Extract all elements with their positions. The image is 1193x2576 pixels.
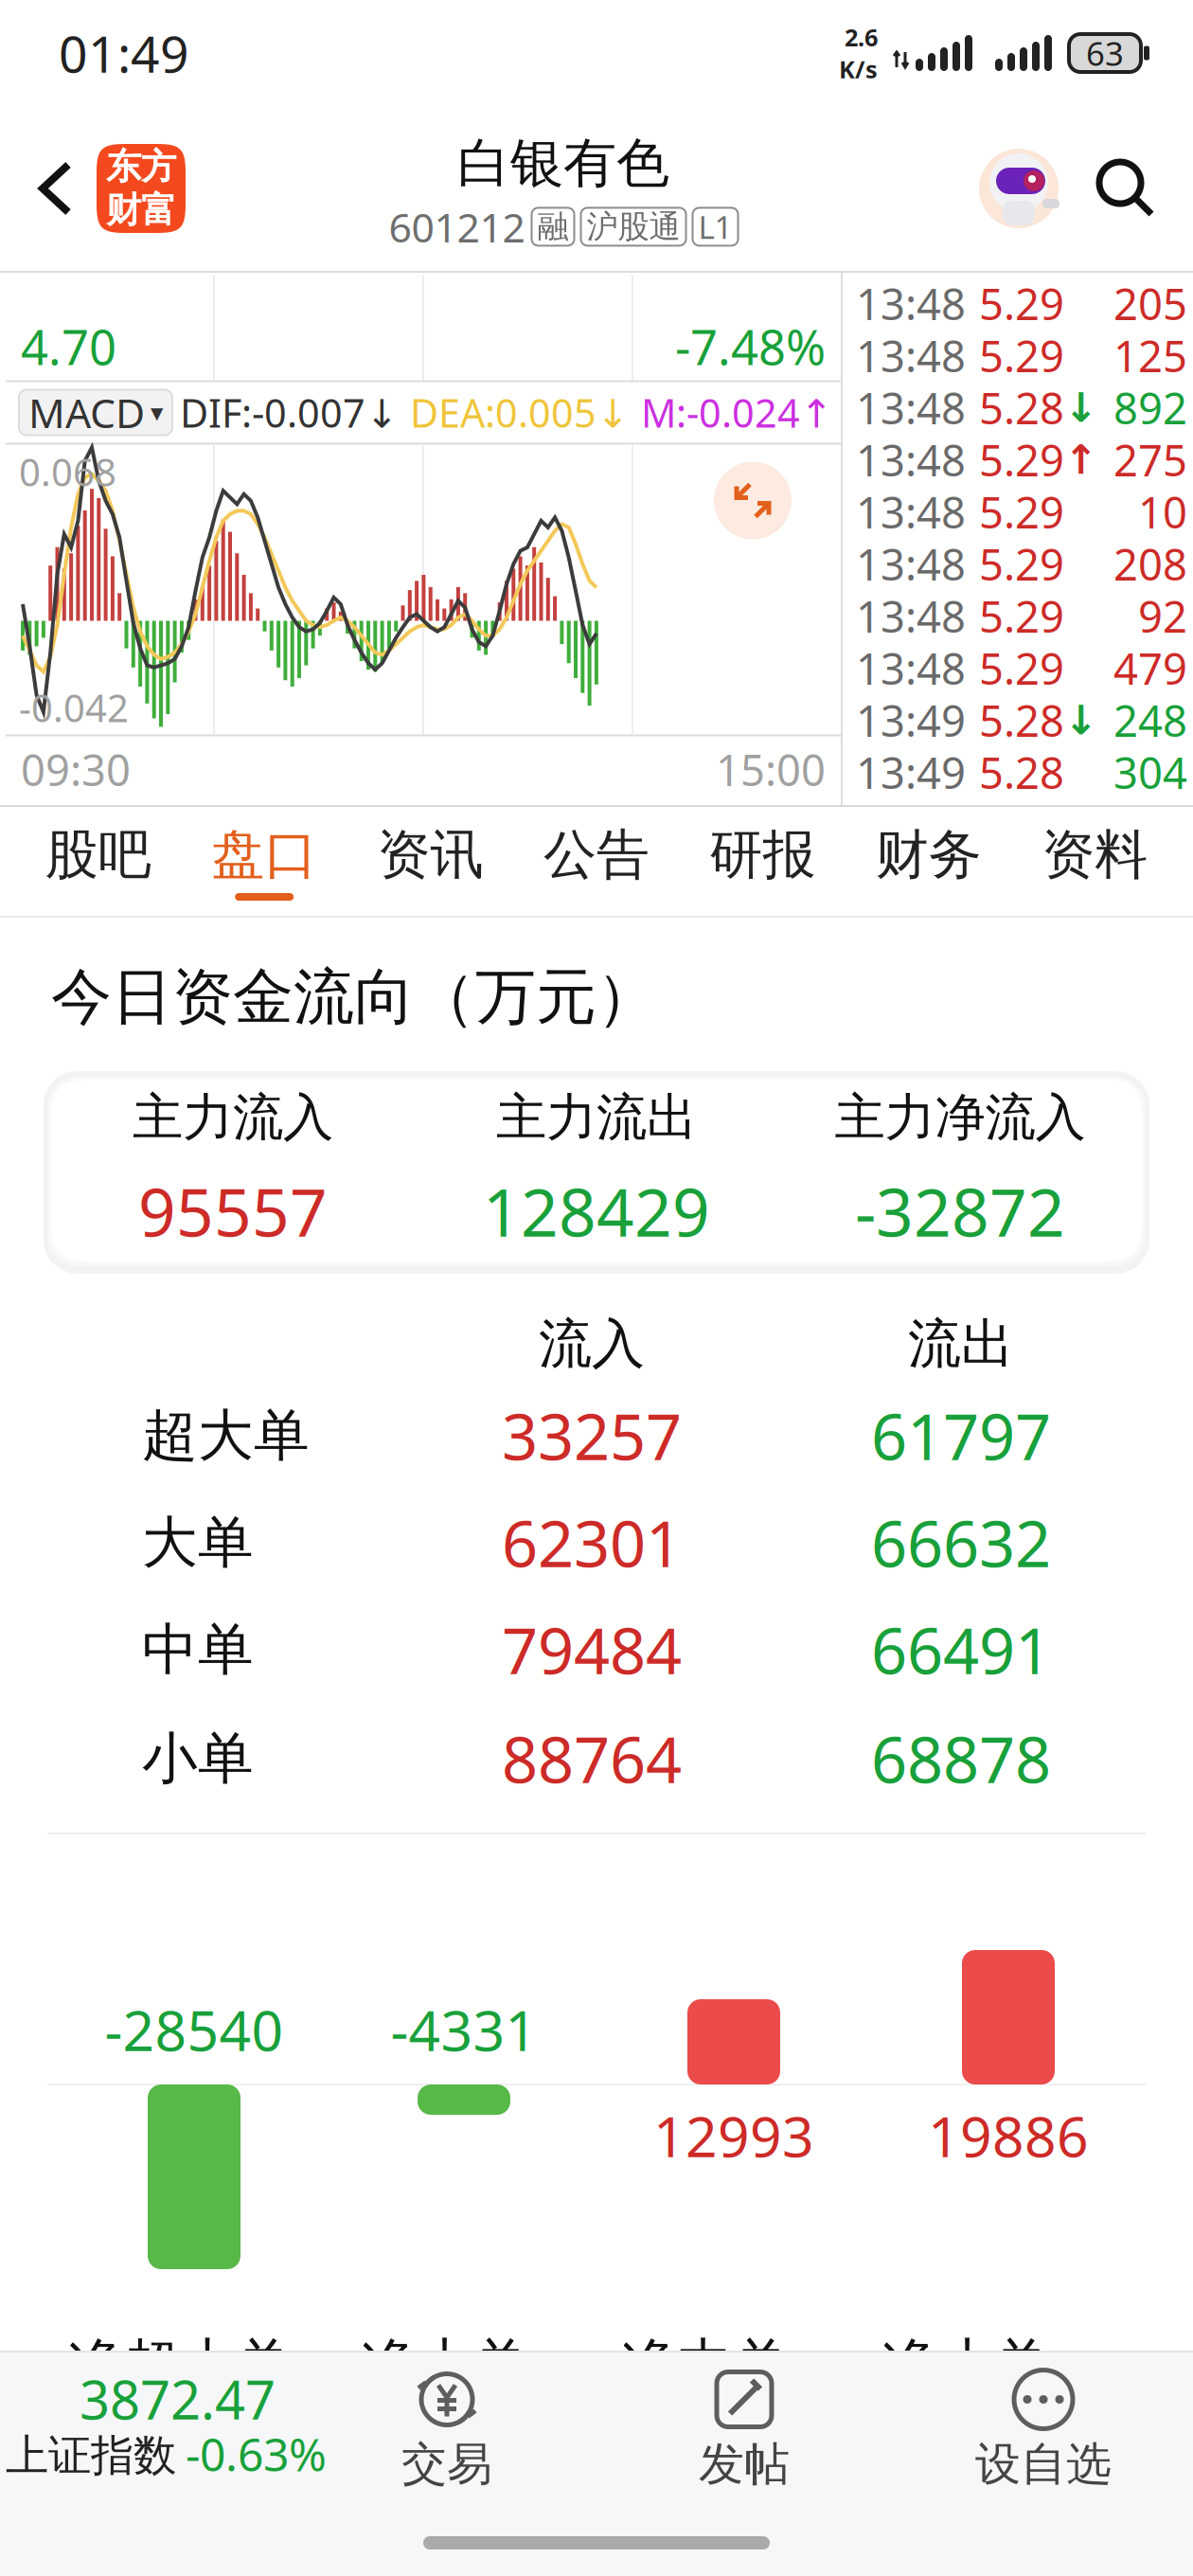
staticText: 上证指数 (6, 2429, 176, 2482)
staticText: 10 (1138, 483, 1187, 540)
staticText: 92 (1138, 588, 1187, 645)
button[interactable]: 设自选 (930, 2365, 1157, 2494)
staticText: 61797 (871, 1394, 1051, 1478)
staticText: 13:48 (856, 588, 966, 645)
button[interactable]: East Money (97, 144, 186, 233)
staticText: 19886 (928, 2099, 1089, 2172)
staticText: ↓ (1064, 697, 1098, 743)
staticText: 275 (1113, 431, 1187, 488)
staticText: -0.63% (186, 2424, 327, 2484)
button[interactable]: 公告 (513, 807, 680, 916)
staticText: 13:48 (856, 379, 966, 436)
staticText: 主力净流入 (835, 1086, 1086, 1148)
button[interactable]: 3872.47 (0, 2373, 379, 2496)
staticText: 33257 (502, 1394, 682, 1478)
staticText: 63 (1086, 31, 1124, 75)
staticText: 79484 (502, 1608, 682, 1692)
staticText: 13:48 (856, 327, 966, 384)
button[interactable]: Back (0, 161, 97, 216)
staticText: 融 (537, 207, 569, 246)
staticText: -28540 (105, 1993, 284, 2066)
staticText: 股吧 (45, 822, 151, 887)
staticText: 09:30 (21, 741, 131, 798)
staticText: 128429 (483, 1167, 710, 1255)
staticText: 5.28 (979, 744, 1064, 801)
button[interactable]: Search (1059, 159, 1193, 218)
staticText: 66491 (871, 1608, 1051, 1692)
button[interactable]: 盘口 (181, 807, 347, 916)
staticText: 13:48 (856, 640, 966, 697)
staticText: 财富 (106, 188, 176, 232)
staticText: 208 (1113, 535, 1187, 592)
staticText: 62301 (502, 1501, 682, 1585)
button[interactable]: 财务 (846, 807, 1012, 916)
staticText: 主力流入 (133, 1086, 333, 1148)
button[interactable]: Fullscreen (714, 462, 792, 539)
button[interactable]: 股吧 (15, 807, 181, 916)
button[interactable]: MACD (19, 390, 172, 435)
staticText: 资讯 (377, 822, 483, 887)
staticText: M:-0.024↑ (641, 386, 833, 438)
staticText: 13:49 (856, 744, 966, 801)
staticText: 东方 (106, 145, 176, 188)
staticText: 5.29 (979, 327, 1064, 384)
staticText: 4.70 (21, 315, 116, 378)
staticText: 财务 (876, 822, 982, 887)
staticText: DIF:-0.007↓ (180, 386, 399, 438)
staticText: 5.29 (979, 483, 1064, 540)
staticText: 5.29 (979, 275, 1064, 332)
staticText: 资料 (1042, 822, 1148, 887)
staticText: 125 (1113, 327, 1187, 384)
staticText: 小单 (142, 1725, 254, 1793)
staticText: 304 (1113, 744, 1187, 801)
staticText: 12993 (653, 2099, 814, 2172)
staticText: 研报 (710, 822, 816, 887)
staticText: 66632 (871, 1501, 1051, 1585)
staticText: 88764 (502, 1717, 682, 1801)
button[interactable]: 发帖 (631, 2365, 858, 2494)
button[interactable]: Assistant (979, 149, 1059, 228)
staticText: DEA:0.005↓ (410, 386, 630, 438)
staticText: 5.29 (979, 431, 1064, 488)
staticText: 设自选 (975, 2436, 1112, 2492)
staticText: ▾ (151, 398, 163, 427)
staticText: 5.29 (979, 535, 1064, 592)
staticText: 205 (1113, 275, 1187, 332)
staticText: 13:48 (856, 535, 966, 592)
staticText: 白银有色 (457, 131, 669, 196)
staticText: 13:48 (856, 483, 966, 540)
staticText: 0.068 (19, 447, 116, 497)
staticText: L1 (698, 206, 732, 248)
button[interactable]: 资料 (1012, 807, 1178, 916)
staticText: 大单 (142, 1509, 254, 1577)
staticText: 流出 (908, 1311, 1014, 1376)
button[interactable]: 交易 (333, 2365, 561, 2494)
staticText: 892 (1113, 379, 1187, 436)
staticText: 净大单 (361, 2331, 529, 2399)
staticText: 发帖 (699, 2436, 790, 2492)
staticText: 盘口 (211, 822, 317, 887)
staticText: 交易 (401, 2436, 492, 2492)
staticText: ↑ (1064, 437, 1098, 483)
staticText: 5.28 (979, 692, 1064, 749)
staticText: -32872 (855, 1167, 1065, 1255)
button[interactable]: 资讯 (347, 807, 513, 916)
staticText: 479 (1113, 640, 1187, 697)
button[interactable]: 研报 (680, 807, 846, 916)
staticText: -7.48% (675, 315, 826, 378)
staticText: -0.042 (19, 682, 129, 733)
staticText: 沪股通 (587, 207, 680, 246)
staticText: -4331 (391, 1993, 537, 2066)
staticText: ↓ (1064, 385, 1098, 431)
staticText: 13:49 (856, 692, 966, 749)
staticText: 5.28 (979, 379, 1064, 436)
staticText: 248 (1113, 692, 1187, 749)
staticText: 5.29 (979, 640, 1064, 697)
staticText: 今日资金流向（万元） (51, 960, 657, 1034)
